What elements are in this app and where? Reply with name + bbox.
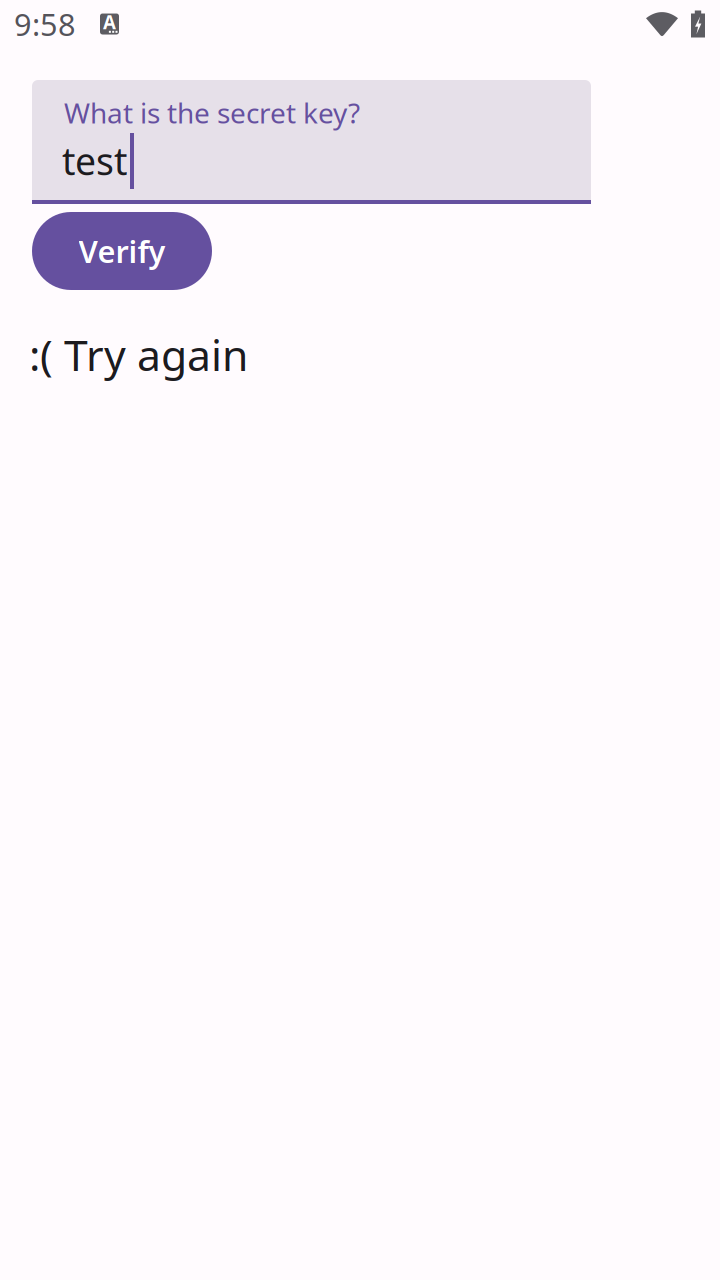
staticText: test [62,136,127,186]
button[interactable]: What is the secret key? [32,80,591,204]
staticText: :( Try again [29,326,248,383]
staticText: 9:58 [14,4,76,44]
staticText: Verify [78,231,165,271]
button[interactable]: Verify [32,212,212,290]
staticText: What is the secret key? [64,94,360,131]
staticText: A [103,10,116,34]
